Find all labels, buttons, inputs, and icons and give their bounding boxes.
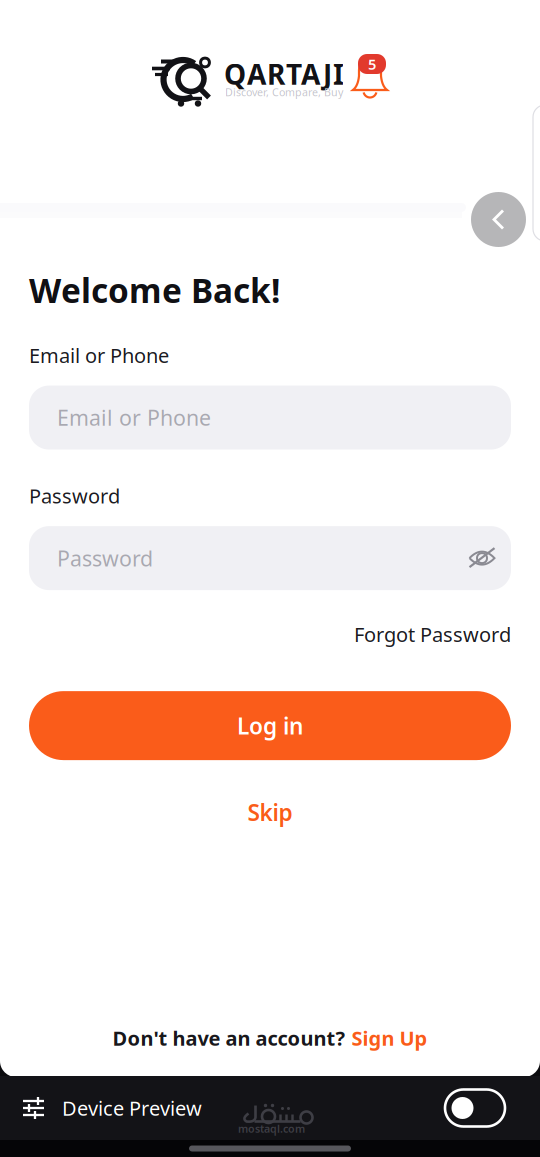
staticText: Password xyxy=(29,483,120,509)
button[interactable]: Show password xyxy=(467,543,497,573)
button[interactable]: Toggle device preview xyxy=(445,1089,505,1126)
button[interactable]: Preview settings xyxy=(14,1088,54,1128)
staticText: Forgot Password xyxy=(354,621,511,647)
staticText: Sign Up xyxy=(351,1025,427,1051)
staticText: QARTAJI xyxy=(224,55,344,93)
button[interactable]: Forgot Password xyxy=(354,621,511,647)
button[interactable]: Skip xyxy=(247,799,292,825)
button[interactable]: Sign Up xyxy=(351,1025,427,1051)
staticText: Log in xyxy=(237,711,303,741)
staticText: Device Preview xyxy=(62,1095,202,1121)
staticText: Discover, Compare, Buy xyxy=(225,85,343,99)
staticText: 5 xyxy=(368,54,376,74)
button[interactable]: Log in xyxy=(29,691,511,760)
staticText: Password xyxy=(57,544,153,572)
staticText: Welcome Back! xyxy=(29,268,280,312)
staticText: Email or Phone xyxy=(29,342,169,369)
staticText: Email or Phone xyxy=(57,403,211,432)
button[interactable]: Back xyxy=(471,192,526,247)
staticText: Don't have an account? xyxy=(112,1025,345,1051)
staticText: mostaql.com xyxy=(238,1121,305,1136)
staticText: Skip xyxy=(247,797,292,827)
